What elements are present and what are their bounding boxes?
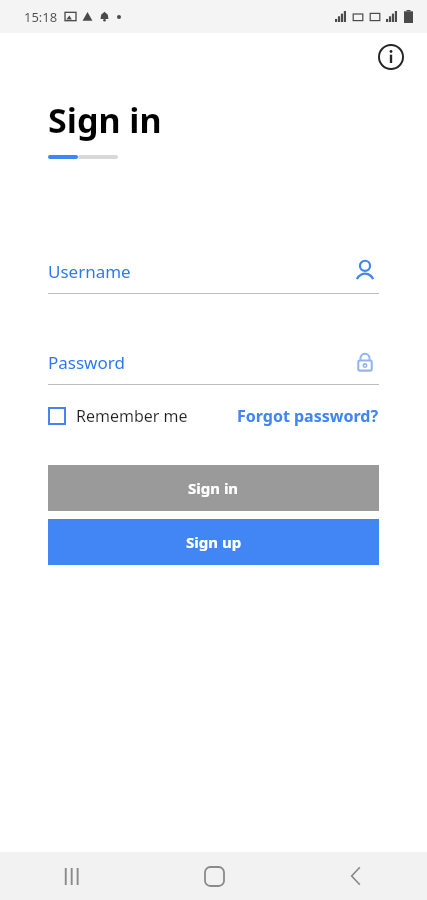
staticText: 15:18 (24, 8, 58, 26)
button[interactable]: Recents (0, 852, 143, 900)
staticText: Remember me (76, 405, 188, 427)
staticText: Username (48, 260, 351, 283)
button[interactable]: Password (48, 348, 379, 376)
staticText: Sign in (188, 478, 239, 498)
button[interactable]: Back (285, 852, 427, 900)
staticText: Sign up (186, 532, 242, 552)
button[interactable]: Sign up (48, 519, 379, 565)
button[interactable]: Remember me (48, 405, 188, 427)
button[interactable]: Forgot password? (237, 405, 379, 427)
staticText: Forgot password? (237, 405, 379, 427)
button[interactable]: Sign in (48, 465, 379, 511)
button[interactable]: Info (371, 37, 411, 77)
button[interactable]: Home (143, 852, 285, 900)
button[interactable]: Username (48, 257, 379, 285)
staticText: Sign in (48, 97, 162, 143)
staticText: Password (48, 351, 351, 374)
